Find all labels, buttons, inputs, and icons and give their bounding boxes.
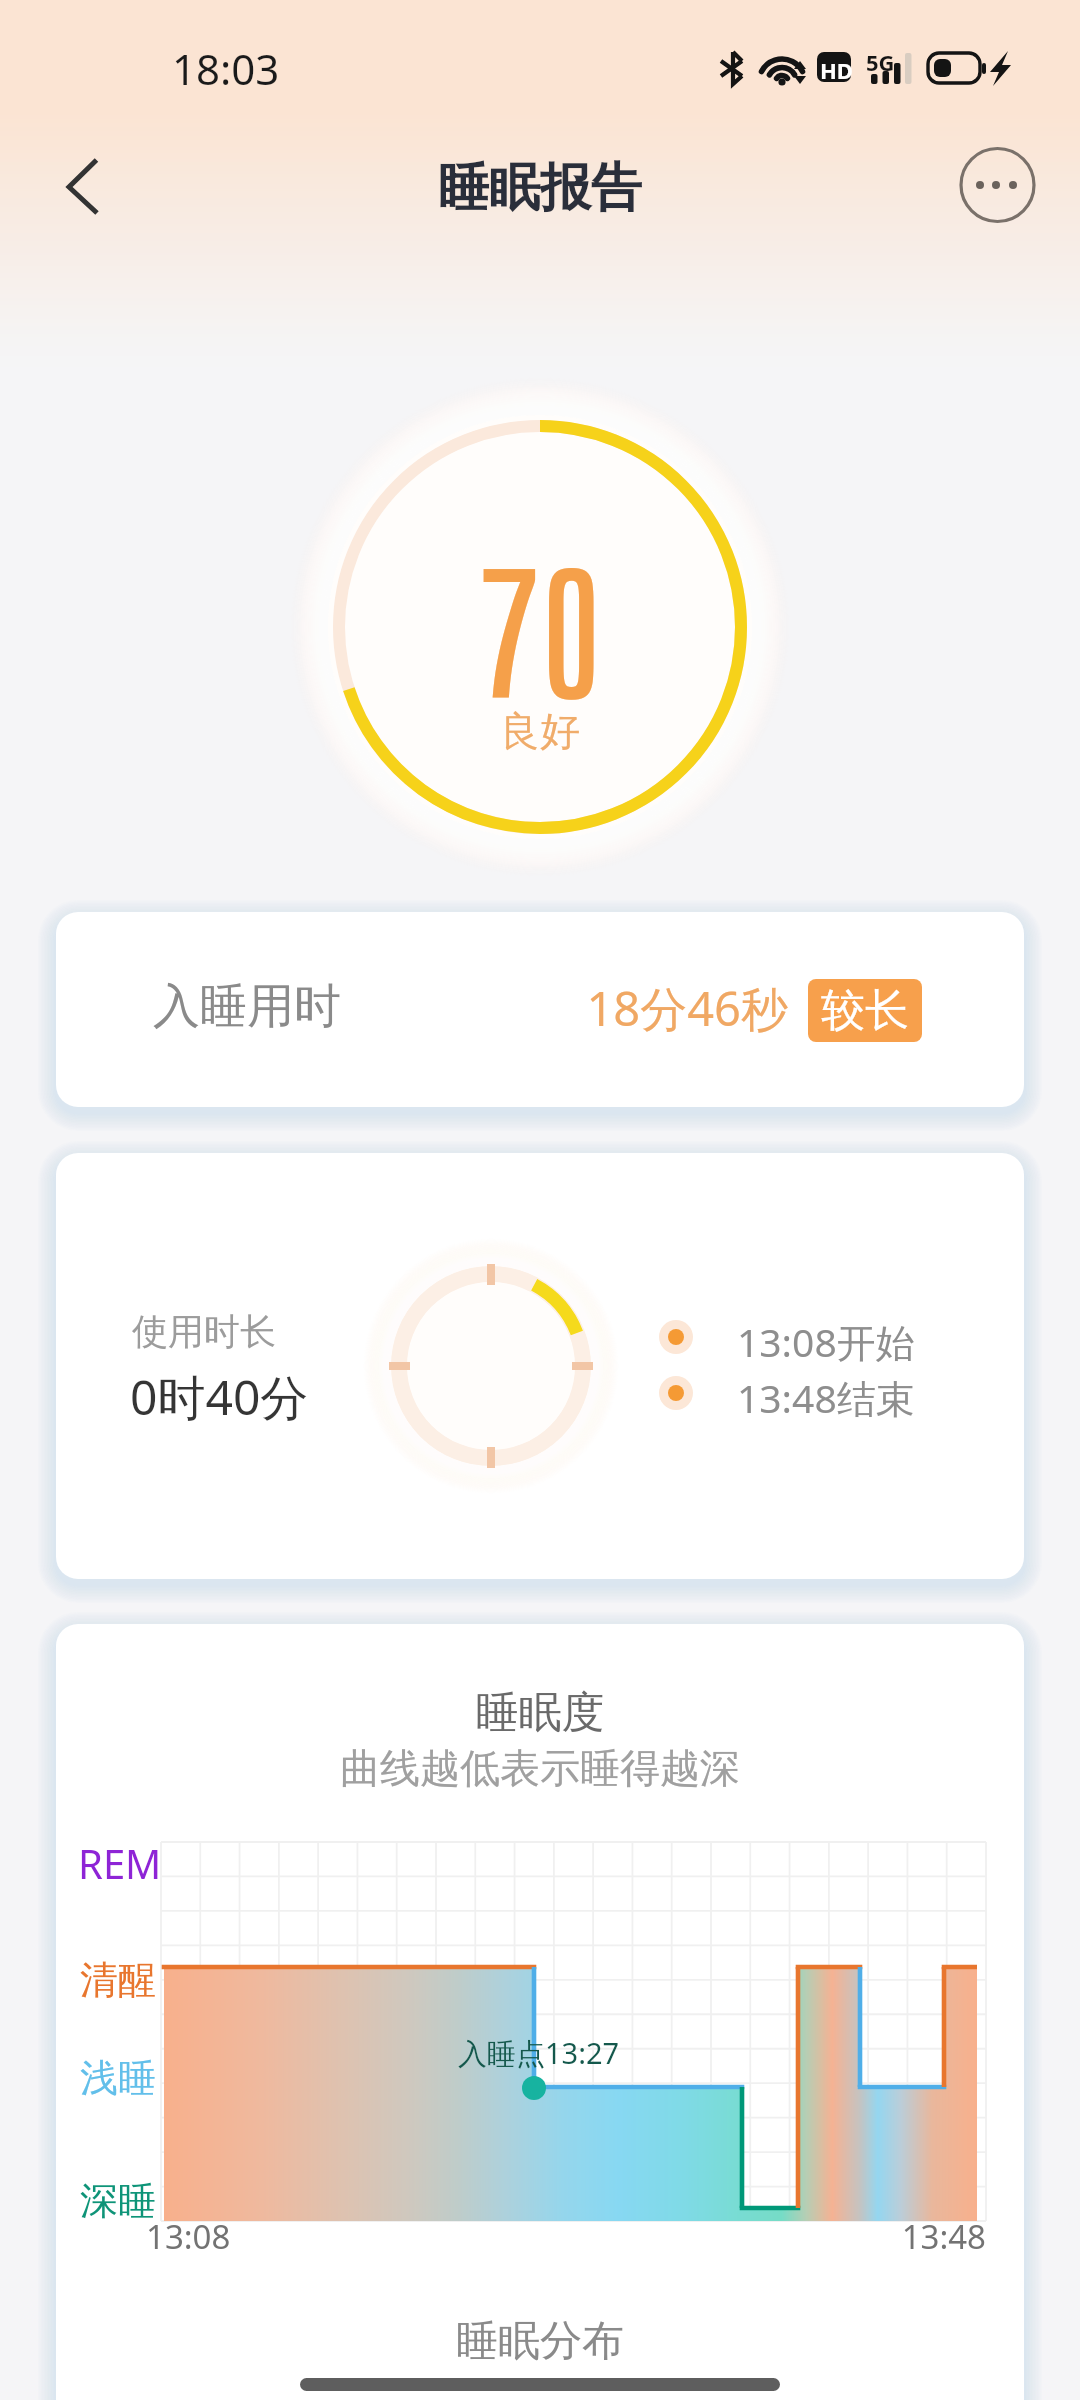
staticText: 较长 xyxy=(821,983,909,1038)
button[interactable]: More options xyxy=(952,140,1042,230)
staticText: 18分46秒 xyxy=(388,976,788,1046)
staticText: 睡眠分布 xyxy=(56,2315,1024,2368)
button[interactable]: 入睡用时 xyxy=(56,912,1024,1107)
staticText: 18:03 xyxy=(172,40,280,97)
button[interactable]: Back xyxy=(40,138,130,234)
staticText: 5G xyxy=(866,47,895,77)
staticText: 入睡用时 xyxy=(153,977,341,1036)
staticText: 13:08 xyxy=(146,2214,231,2259)
staticText: 使用时长 xyxy=(132,1309,276,1354)
staticText: 0时40分 xyxy=(130,1364,309,1430)
staticText: 70 xyxy=(290,525,790,719)
staticText: 13:08开始 xyxy=(737,1315,915,1368)
staticText: 良好 xyxy=(290,706,790,756)
staticText: 浅睡 xyxy=(80,2054,156,2102)
button[interactable]: 使用时长 xyxy=(56,1153,1024,1579)
staticText: 入睡点13:27 xyxy=(458,2033,620,2073)
staticText: 清醒 xyxy=(80,1956,156,2004)
staticText: REM xyxy=(78,1836,162,1890)
staticText: 睡眠报告 xyxy=(438,156,642,220)
staticText: 曲线越低表示睡得越深 xyxy=(56,1743,1024,1793)
staticText: 13:48 xyxy=(786,2214,986,2270)
staticText: 13:48结束 xyxy=(737,1371,915,1424)
button[interactable]: 较长 xyxy=(808,979,922,1042)
staticText: HD xyxy=(820,55,853,85)
staticText: 睡眠度 xyxy=(56,1686,1024,1740)
staticText: 深睡 xyxy=(80,2177,156,2225)
